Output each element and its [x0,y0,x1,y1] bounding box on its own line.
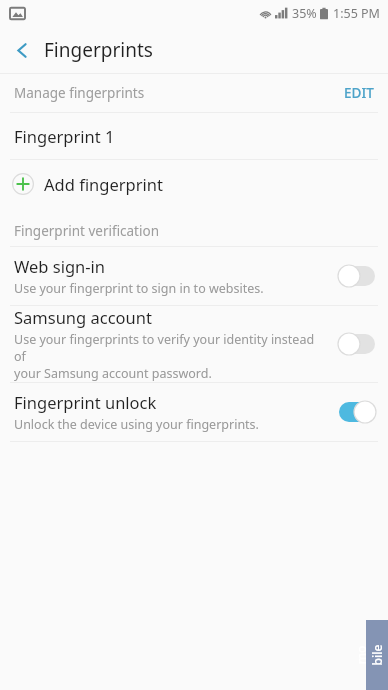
button[interactable]: Fingerprint unlock [0,383,388,441]
staticText: Fingerprints [44,37,153,63]
staticText: mobile.ir [353,644,388,666]
staticText: Manage fingerprints [14,84,344,102]
staticText: Web sign-in [14,255,106,277]
staticText: Fingerprint verification [14,222,159,240]
staticText: Add fingerprint [44,173,163,195]
staticText: EDIT [344,84,374,102]
button[interactable]: Toggle off [336,331,378,357]
staticText: 1:55 PM [333,5,380,22]
staticText: 35% [292,5,317,22]
staticText: Unlock the device using your fingerprint… [14,416,259,433]
button[interactable]: EDIT [344,84,374,102]
staticText: Use your fingerprints to verify your ide… [14,331,328,382]
button[interactable]: Add fingerprint [0,160,388,208]
staticText: Fingerprint 1 [14,125,115,147]
button[interactable]: Toggle on [336,399,378,425]
button[interactable]: Web sign-in [0,247,388,305]
staticText: Fingerprint unlock [14,391,157,413]
button[interactable]: Back [0,28,44,72]
staticText: Use your fingerprint to sign in to websi… [14,280,264,297]
button[interactable]: Toggle off [336,263,378,289]
staticText: Samsung account [14,306,152,328]
button[interactable]: Fingerprint 1 [0,113,388,159]
button[interactable]: Samsung account [0,306,388,382]
